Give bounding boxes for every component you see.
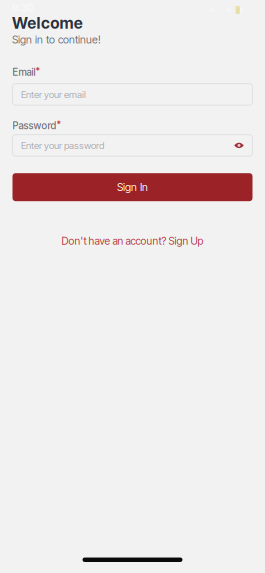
staticText: Don't have an account? Sign Up [61,235,203,247]
button[interactable]: Sign In [12,173,252,201]
staticText: * [35,66,40,76]
staticText: * [56,119,61,130]
staticText: Sign in to continue! [12,33,101,46]
staticText: Sign In [117,181,148,194]
staticText: Password [12,120,56,132]
button[interactable]: Don't have an account? Sign Up [0,236,265,247]
staticText: Enter your email [21,89,86,100]
staticText: Welcome [12,13,83,33]
staticText: Email [12,66,35,78]
staticText: Enter your password [21,140,104,151]
